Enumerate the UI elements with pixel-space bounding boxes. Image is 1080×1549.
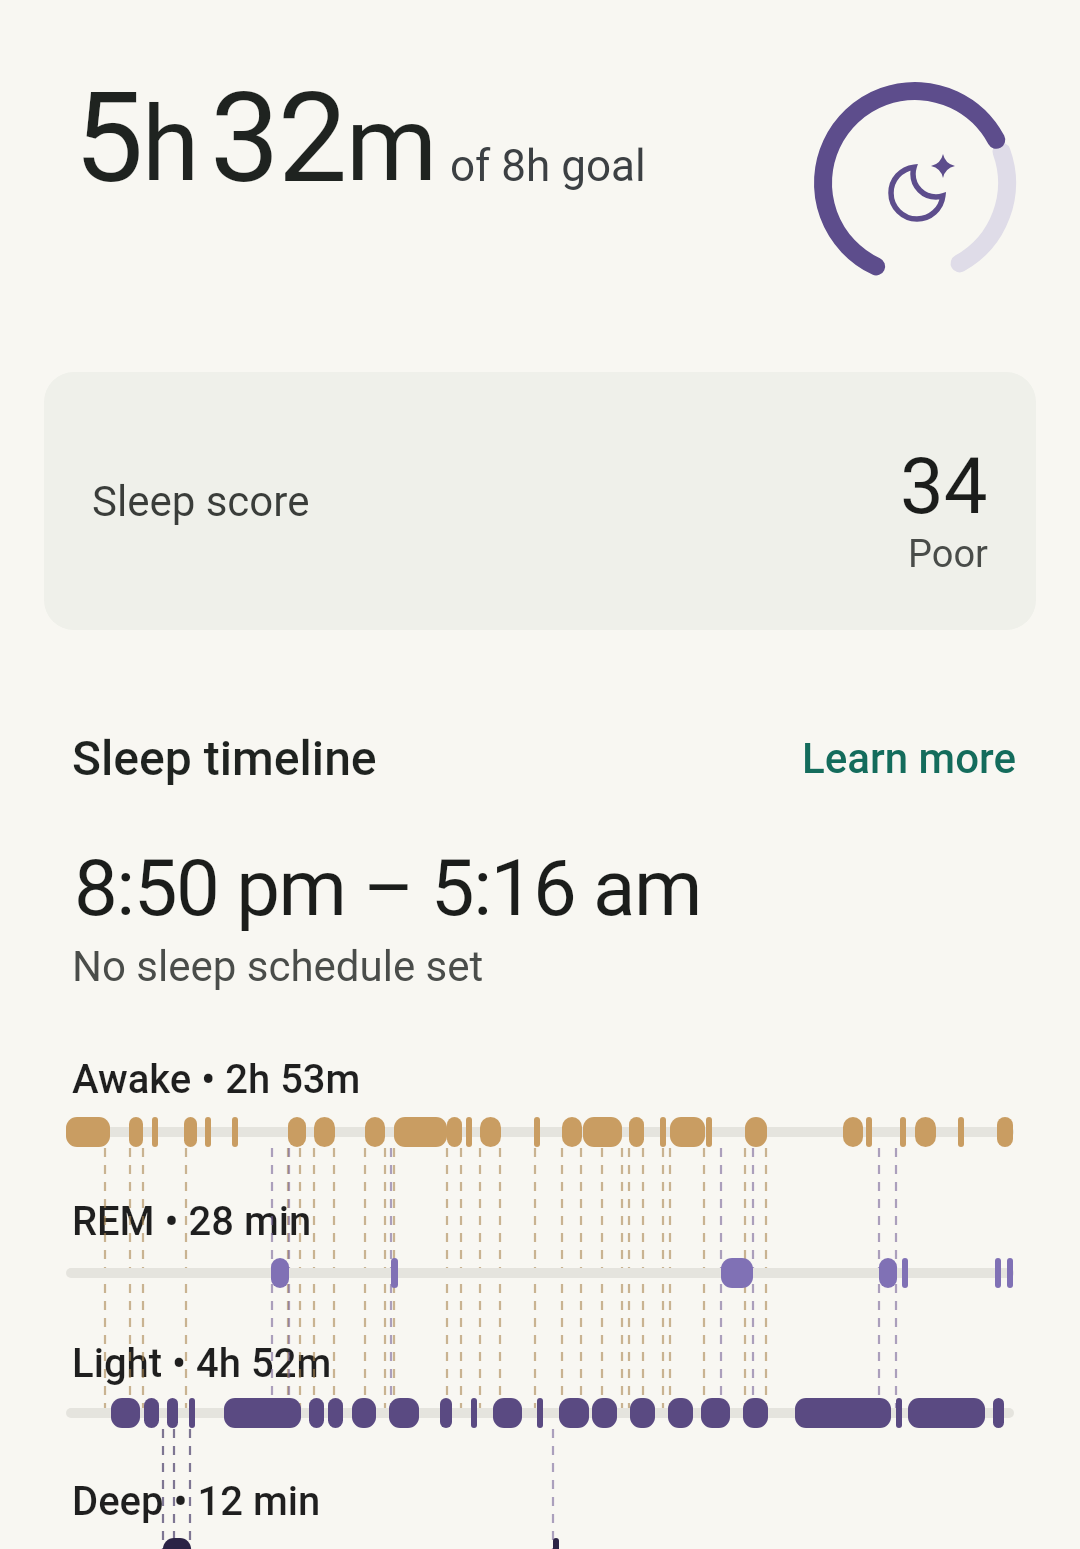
staticText: Sleep score — [92, 477, 310, 526]
staticText: 34 — [900, 441, 988, 532]
staticText: Learn more — [802, 734, 1016, 783]
staticText: 5 — [74, 66, 142, 211]
button[interactable]: Sleep score — [44, 372, 1036, 630]
staticText: Light • 4h 52m — [72, 1340, 332, 1387]
staticText: m — [346, 84, 436, 206]
staticText: 32 — [210, 66, 346, 211]
staticText: h — [142, 84, 198, 206]
staticText: Deep • 12 min — [72, 1478, 321, 1525]
staticText: No sleep schedule set — [72, 942, 484, 991]
button[interactable]: Learn more — [866, 734, 1080, 783]
staticText: 8:50 pm – 5:16 am — [74, 843, 701, 934]
staticText: Poor — [908, 532, 988, 577]
staticText: of 8h goal — [450, 140, 646, 192]
staticText: Sleep timeline — [72, 730, 377, 786]
staticText: Awake • 2h 53m — [72, 1056, 361, 1103]
staticText: REM • 28 min — [72, 1198, 312, 1245]
